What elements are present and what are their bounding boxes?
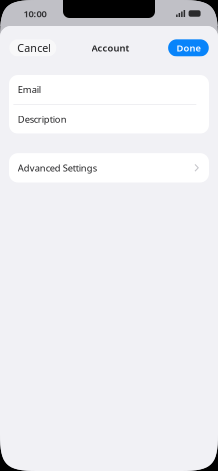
staticText: Email <box>18 83 41 96</box>
button[interactable]: Cancel <box>9 39 56 56</box>
staticText: Description <box>18 113 67 125</box>
staticText: Account <box>91 42 129 54</box>
staticText: 10:00 <box>23 7 46 20</box>
button[interactable]: Advanced Settings <box>9 153 209 182</box>
staticText: Advanced Settings <box>18 162 97 174</box>
button[interactable]: Done <box>168 39 209 56</box>
staticText: Cancel <box>17 41 51 55</box>
staticText: Done <box>176 42 200 54</box>
